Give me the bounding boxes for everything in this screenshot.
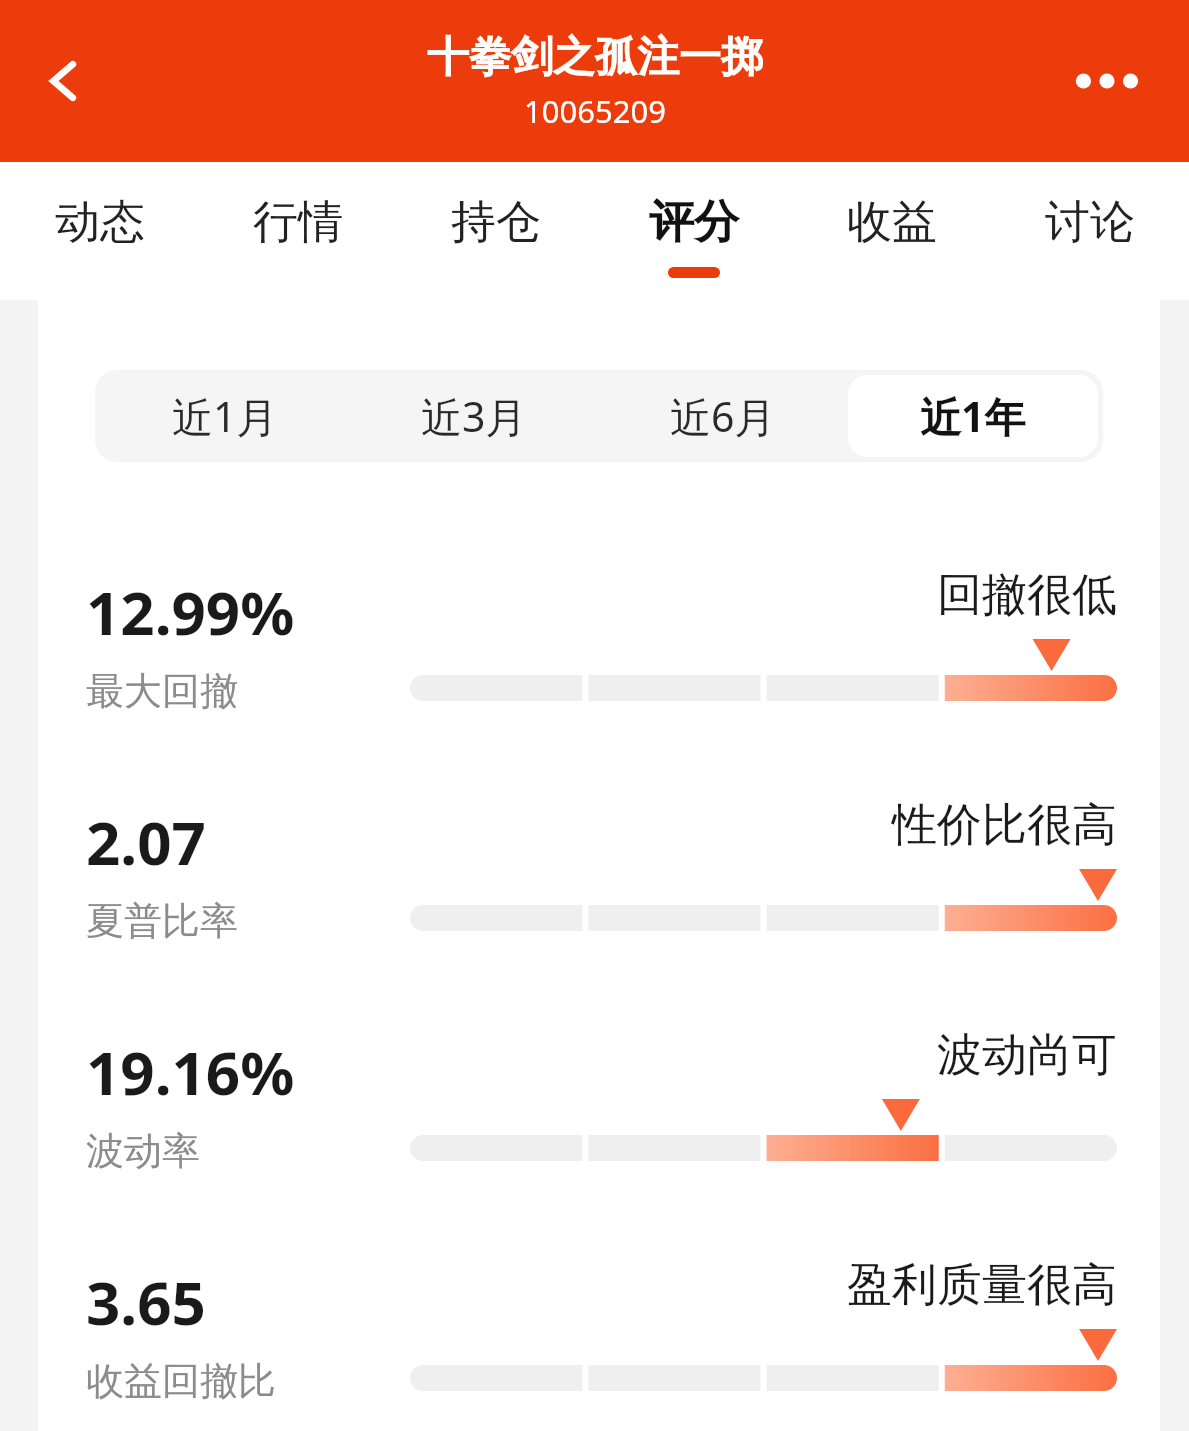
staticText: 讨论 [1045,194,1135,251]
button[interactable]: 12.99% [38,567,1160,737]
staticText: 3.65 [86,1261,206,1343]
staticText: 最大回撤 [86,667,238,715]
staticText: 评分 [649,194,739,251]
staticText: 近6月 [670,388,776,444]
button[interactable]: 行情 [199,162,397,300]
staticText: 十拳剑之孤注一掷 [427,31,763,84]
button[interactable]: 讨论 [991,162,1189,300]
staticText: 近1月 [172,388,278,444]
button[interactable]: 3.65 [38,1257,1160,1427]
button[interactable]: 评分 [595,162,793,300]
staticText: 波动率 [86,1127,200,1175]
staticText: 动态 [55,194,145,251]
staticText: 12.99% [86,571,295,653]
staticText: 盈利质量很高 [847,1257,1117,1314]
button[interactable]: 19.16% [38,1027,1160,1197]
button[interactable]: More options [1062,31,1152,131]
button[interactable]: Back [26,43,102,119]
staticText: 2.07 [86,801,206,883]
button[interactable]: 近3月 [349,375,598,457]
staticText: 波动尚可 [937,1027,1117,1084]
staticText: 近3月 [421,388,527,444]
staticText: 持仓 [451,194,541,251]
staticText: 10065209 [524,90,666,132]
button[interactable]: 收益 [793,162,991,300]
staticText: 近1年 [920,388,1026,444]
staticText: 性价比很高 [892,797,1117,854]
button[interactable]: 近6月 [598,375,848,457]
staticText: 收益 [847,194,937,251]
staticText: 收益回撤比 [86,1357,276,1405]
button[interactable]: 持仓 [397,162,595,300]
staticText: 夏普比率 [86,897,238,945]
staticText: 行情 [253,194,343,251]
button[interactable]: 2.07 [38,797,1160,967]
staticText: 回撤很低 [937,567,1117,624]
staticText: 19.16% [86,1031,295,1113]
button[interactable]: 动态 [0,162,199,300]
button[interactable]: 近1年 [848,375,1098,457]
button[interactable]: 近1月 [100,375,349,457]
